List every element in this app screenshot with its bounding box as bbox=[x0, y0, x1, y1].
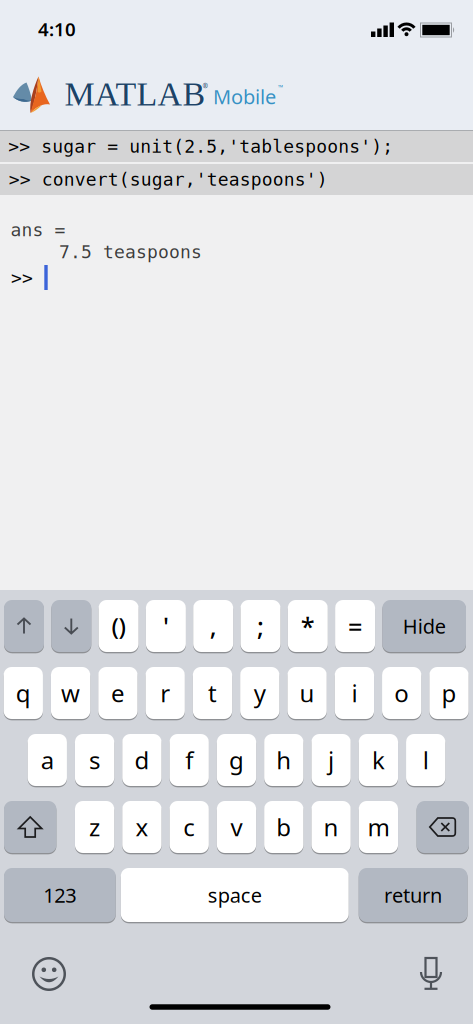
button[interactable]: k bbox=[359, 734, 398, 786]
staticText: w bbox=[61, 677, 80, 709]
staticText: h bbox=[276, 744, 291, 776]
button[interactable]: j bbox=[311, 734, 351, 786]
button[interactable]: a bbox=[28, 734, 67, 786]
button[interactable]: Hide bbox=[382, 600, 466, 652]
button[interactable]: g bbox=[217, 734, 256, 786]
button[interactable]: o bbox=[382, 667, 421, 719]
staticText: y bbox=[254, 677, 266, 709]
button[interactable]: w bbox=[51, 667, 90, 719]
staticText: q bbox=[16, 677, 31, 709]
staticText: ans = bbox=[11, 219, 66, 240]
staticText: r bbox=[160, 677, 170, 709]
staticText: v bbox=[230, 811, 242, 843]
staticText: >> sugar = unit(2.5,'tablespoons'); bbox=[8, 136, 393, 157]
button[interactable]: r bbox=[145, 667, 185, 719]
staticText: ™ bbox=[278, 83, 283, 92]
button[interactable]: >> sugar = unit(2.5,'tablespoons'); bbox=[0, 131, 473, 162]
staticText: MATLAB bbox=[64, 75, 205, 113]
staticText: >> bbox=[11, 267, 33, 288]
staticText: 4:10 bbox=[38, 17, 76, 41]
button[interactable]: u bbox=[287, 667, 327, 719]
staticText: o bbox=[394, 677, 409, 709]
button[interactable]: q bbox=[4, 667, 43, 719]
button[interactable]: n bbox=[311, 801, 351, 853]
button[interactable]: h bbox=[264, 734, 303, 786]
button[interactable]: Next keyboard bbox=[32, 957, 66, 991]
button[interactable]: p bbox=[429, 667, 469, 719]
staticText: * bbox=[301, 609, 315, 643]
button[interactable]: v bbox=[217, 801, 256, 853]
button[interactable]: return bbox=[359, 868, 467, 922]
button[interactable]: l bbox=[406, 734, 445, 786]
button[interactable]: x bbox=[122, 801, 161, 853]
staticText: k bbox=[372, 744, 385, 776]
staticText: return bbox=[384, 882, 442, 908]
staticText: Mobile bbox=[213, 83, 276, 110]
staticText: , bbox=[210, 609, 217, 643]
button[interactable]: Shift bbox=[4, 801, 56, 853]
button[interactable]: Scroll down bbox=[51, 600, 91, 652]
button[interactable]: , bbox=[193, 600, 233, 652]
staticText: space bbox=[208, 882, 262, 908]
staticText: u bbox=[300, 677, 315, 709]
button[interactable]: b bbox=[264, 801, 303, 853]
staticText: i bbox=[351, 677, 357, 709]
staticText: Hide bbox=[403, 613, 446, 639]
button[interactable]: e bbox=[98, 667, 137, 719]
button[interactable]: * bbox=[288, 600, 328, 652]
button[interactable]: c bbox=[169, 801, 209, 853]
staticText: z bbox=[89, 811, 100, 843]
button[interactable]: s bbox=[75, 734, 114, 786]
staticText: ; bbox=[257, 609, 264, 643]
button[interactable]: () bbox=[99, 600, 139, 652]
staticText: x bbox=[135, 811, 148, 843]
staticText: s bbox=[89, 744, 100, 776]
button[interactable]: Delete bbox=[417, 801, 469, 853]
button[interactable]: = bbox=[335, 600, 375, 652]
button[interactable]: t bbox=[193, 667, 232, 719]
button[interactable]: f bbox=[169, 734, 209, 786]
staticText: e bbox=[111, 677, 125, 709]
staticText: 7.5 teaspoons bbox=[59, 241, 202, 262]
staticText: f bbox=[185, 744, 193, 776]
button[interactable]: d bbox=[122, 734, 161, 786]
button[interactable]: z bbox=[75, 801, 114, 853]
button[interactable]: i bbox=[335, 667, 374, 719]
staticText: l bbox=[423, 744, 429, 776]
button[interactable]: m bbox=[359, 801, 398, 853]
staticText: ' bbox=[163, 609, 169, 643]
staticText: t bbox=[208, 677, 217, 709]
staticText: >> convert(sugar,'teaspoons') bbox=[9, 169, 328, 190]
staticText: g bbox=[229, 744, 244, 776]
button[interactable]: space bbox=[121, 868, 349, 922]
staticText: j bbox=[328, 744, 334, 776]
staticText: d bbox=[134, 744, 149, 776]
button[interactable]: ; bbox=[240, 600, 280, 652]
staticText: c bbox=[183, 811, 195, 843]
button[interactable]: >> convert(sugar,'teaspoons') bbox=[0, 164, 473, 195]
staticText: a bbox=[41, 744, 54, 776]
button[interactable]: 123 bbox=[4, 868, 116, 922]
staticText: = bbox=[348, 609, 362, 643]
button[interactable]: y bbox=[240, 667, 279, 719]
button[interactable]: Dictation bbox=[420, 957, 442, 991]
staticText: ® bbox=[202, 82, 208, 90]
staticText: n bbox=[324, 811, 339, 843]
button[interactable]: ' bbox=[146, 600, 186, 652]
staticText: p bbox=[441, 677, 456, 709]
staticText: 123 bbox=[43, 882, 76, 908]
button[interactable]: Scroll up bbox=[4, 600, 44, 652]
staticText: b bbox=[276, 811, 291, 843]
staticText: m bbox=[367, 811, 389, 843]
staticText: () bbox=[112, 610, 126, 642]
